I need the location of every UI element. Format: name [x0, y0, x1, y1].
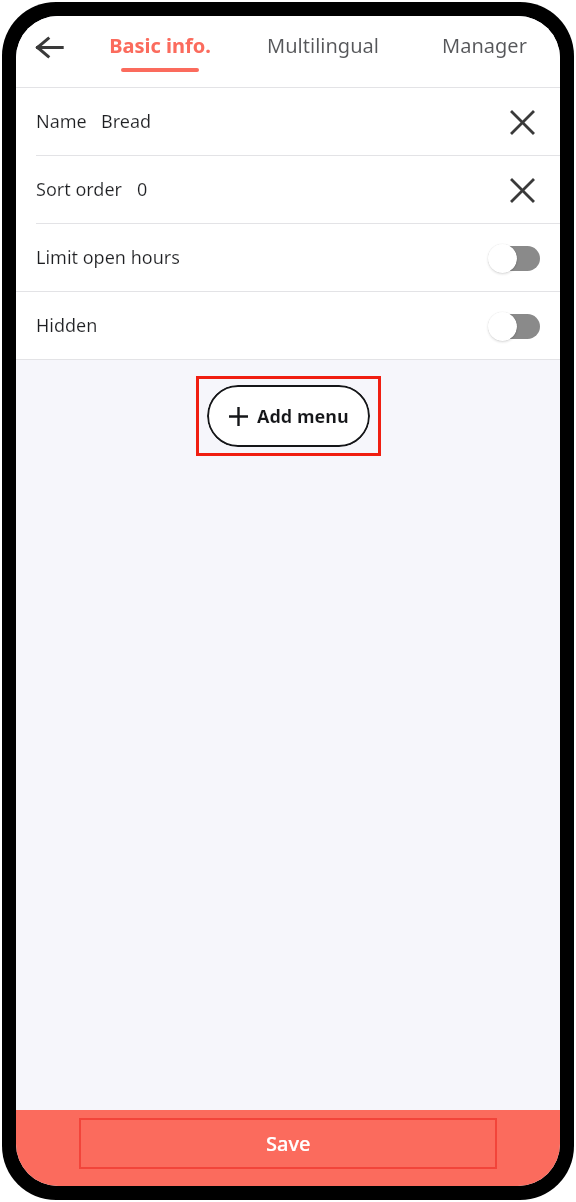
button[interactable]: Manager — [408, 16, 560, 88]
staticText: Sort order — [36, 177, 123, 202]
button[interactable]: Hidden switch, off — [488, 311, 540, 341]
button[interactable]: Clear Name — [500, 100, 544, 144]
button[interactable]: Back — [16, 16, 82, 88]
button[interactable]: Add menu — [207, 385, 370, 447]
button[interactable]: Save — [16, 1110, 560, 1186]
staticText: 0 — [137, 177, 148, 202]
button[interactable]: Limit open hours switch, off — [488, 243, 540, 273]
staticText: Limit open hours — [36, 245, 180, 270]
button[interactable]: Hidden — [16, 292, 560, 359]
button[interactable]: Multilingual — [238, 16, 408, 88]
button[interactable]: Sort order — [16, 156, 560, 223]
button[interactable]: Limit open hours — [16, 224, 560, 291]
button[interactable]: Basic info. — [82, 16, 238, 88]
staticText: Basic info. — [109, 32, 211, 59]
staticText: Multilingual — [267, 32, 379, 59]
staticText: Bread — [101, 109, 152, 134]
staticText: Name — [36, 109, 87, 134]
staticText: Hidden — [36, 313, 98, 338]
button[interactable]: Name — [16, 88, 560, 155]
staticText: Manager — [442, 32, 527, 59]
button[interactable]: Clear Sort order — [500, 168, 544, 212]
staticText: Add menu — [257, 404, 349, 429]
staticText: Save — [266, 1130, 311, 1157]
